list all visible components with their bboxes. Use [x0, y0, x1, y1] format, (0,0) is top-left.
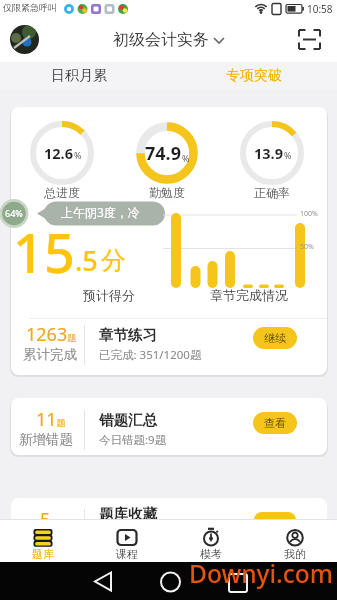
staticText: .5 — [75, 242, 98, 279]
staticText: 章节练习 — [99, 326, 157, 344]
staticText: Downyi.com — [189, 557, 333, 590]
staticText: 累计完成 — [23, 346, 77, 363]
staticText: 章节完成情况 — [210, 287, 288, 303]
staticText: % — [74, 149, 82, 161]
button[interactable]: 专项突破 — [168, 62, 337, 90]
staticText: 查看 — [264, 416, 286, 430]
staticText: 11题 — [36, 407, 66, 432]
staticText: 总进度 — [44, 185, 80, 200]
button[interactable]: 继续 — [253, 327, 297, 349]
staticText: 50% — [300, 242, 314, 252]
staticText: 我的 — [284, 547, 306, 561]
staticText: 15 — [13, 215, 75, 279]
staticText: 预计得分 — [83, 287, 135, 303]
button[interactable] — [10, 25, 39, 54]
button[interactable]: 题库 — [0, 520, 85, 562]
staticText: 分 — [101, 245, 126, 276]
staticText: 错题汇总 — [99, 411, 157, 429]
staticText: 1263题 — [26, 322, 77, 347]
staticText: 新增错题 — [19, 431, 73, 448]
staticText: 74.9 — [145, 141, 181, 166]
staticText: 仅限紧急呼叫 — [3, 2, 57, 13]
button[interactable] — [11, 319, 327, 375]
staticText: 课程 — [116, 547, 138, 561]
staticText: % — [182, 152, 190, 164]
staticText: 模考 — [200, 547, 222, 561]
button[interactable]: 查看 — [253, 412, 297, 434]
staticText: 12.6 — [44, 143, 73, 163]
staticText: % — [284, 149, 292, 161]
staticText: 继续 — [264, 331, 286, 345]
staticText: 专项突破 — [226, 67, 282, 85]
button[interactable] — [11, 398, 327, 455]
button[interactable]: 初级会计实务 — [113, 30, 224, 50]
staticText: 10:58 — [307, 2, 333, 16]
button[interactable] — [11, 498, 327, 522]
button[interactable]: 课程 — [85, 520, 169, 562]
staticText: 日积月累 — [51, 67, 107, 85]
staticText: 64% — [5, 207, 23, 219]
button[interactable]: 我的 — [253, 520, 337, 562]
staticText: 正确率 — [254, 185, 290, 200]
staticText: 今日错题:9题 — [99, 432, 167, 448]
staticText: 13.9 — [254, 143, 283, 163]
button[interactable]: 模考 — [169, 520, 253, 562]
staticText: 题库 — [32, 547, 54, 561]
staticText: 题库收藏 — [99, 505, 157, 523]
button[interactable] — [298, 28, 322, 52]
staticText: 勤勉度 — [149, 185, 185, 200]
staticText: 100% — [300, 209, 318, 219]
staticText: 初级会计实务 — [113, 30, 209, 50]
button[interactable]: 日积月累 — [0, 62, 168, 90]
staticText: 5题 — [40, 507, 60, 532]
staticText: 上午阴3度，冷 — [61, 204, 140, 220]
staticText: 已完成: 351/1200题 — [99, 347, 202, 363]
